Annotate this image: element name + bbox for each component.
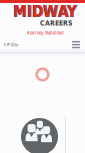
staticText: CAREERS	[40, 19, 72, 27]
button[interactable]: Instagram	[11, 42, 14, 47]
button[interactable]: Twitter	[7, 42, 10, 47]
button[interactable]: Menu	[70, 40, 82, 50]
staticText: Kearney, Nebraska	[27, 30, 64, 35]
staticText: MIDWAY	[13, 3, 77, 21]
staticText: MIDWAY	[13, 2, 77, 20]
button[interactable]: Facebook	[3, 42, 6, 47]
button[interactable]: LinkedIn	[15, 42, 18, 47]
staticText: MIDWAY	[13, 3, 77, 21]
